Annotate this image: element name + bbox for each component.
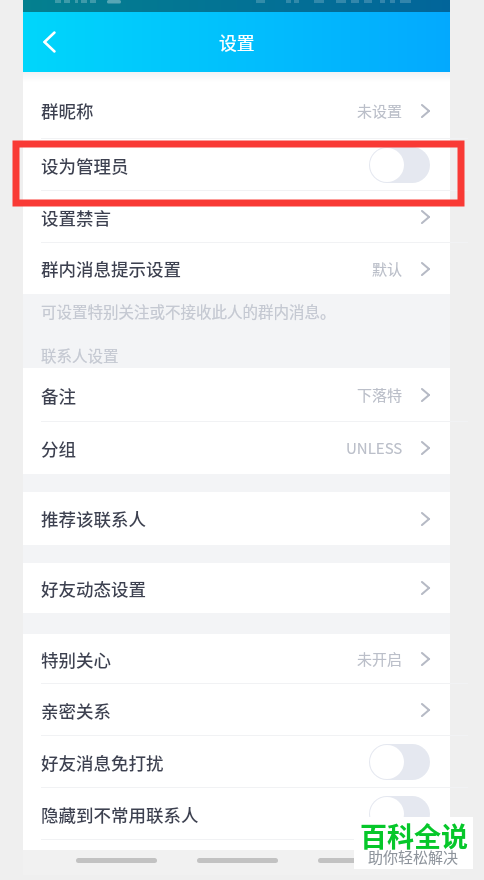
staticText: UNLESS — [346, 437, 403, 459]
staticText: 分组 — [41, 436, 76, 461]
staticText: 好友消息免打扰 — [41, 750, 164, 775]
button[interactable]: 特别关心 — [23, 634, 450, 684]
staticText: 设为管理员 — [41, 153, 129, 178]
staticText: 群内消息提示设置 — [41, 256, 181, 281]
staticText: 可设置特别关注或不接收此人的群内消息。 — [41, 300, 336, 322]
staticText: 群昵称 — [41, 98, 94, 123]
button[interactable]: 设置禁言 — [23, 191, 450, 243]
staticText: 推荐该联系人 — [41, 506, 146, 531]
button[interactable]: 分组 — [23, 422, 450, 474]
staticText: 百科全说 — [360, 816, 468, 855]
staticText: 未开启 — [357, 648, 403, 670]
staticText: 联系人设置 — [41, 344, 119, 366]
staticText: 设置禁言 — [41, 205, 111, 230]
button[interactable]: 推荐该联系人 — [23, 492, 450, 545]
staticText: 下落特 — [357, 384, 403, 406]
staticText: 助你轻松解决 — [368, 846, 459, 868]
button[interactable]: 好友动态设置 — [23, 563, 450, 613]
staticText: 好友动态设置 — [41, 576, 146, 601]
staticText: 备注 — [41, 383, 76, 408]
button[interactable]: 群昵称 — [23, 82, 450, 139]
button[interactable]: Back — [23, 15, 77, 69]
button[interactable]: 设为管理员 — [23, 139, 450, 191]
button[interactable]: 好友消息免打扰 — [23, 736, 450, 788]
staticText: 亲密关系 — [41, 698, 111, 723]
staticText: 设置 — [219, 29, 255, 55]
button[interactable]: 备注 — [23, 368, 450, 422]
staticText: 默认 — [372, 258, 403, 280]
staticText: 隐藏到不常用联系人 — [41, 802, 199, 827]
button[interactable]: 隐藏到不常用联系人 — [23, 788, 450, 840]
button[interactable]: 群内消息提示设置 — [23, 243, 450, 294]
button[interactable]: 亲密关系 — [23, 684, 450, 736]
staticText: 特别关心 — [41, 647, 111, 672]
staticText: 未设置 — [357, 100, 403, 122]
